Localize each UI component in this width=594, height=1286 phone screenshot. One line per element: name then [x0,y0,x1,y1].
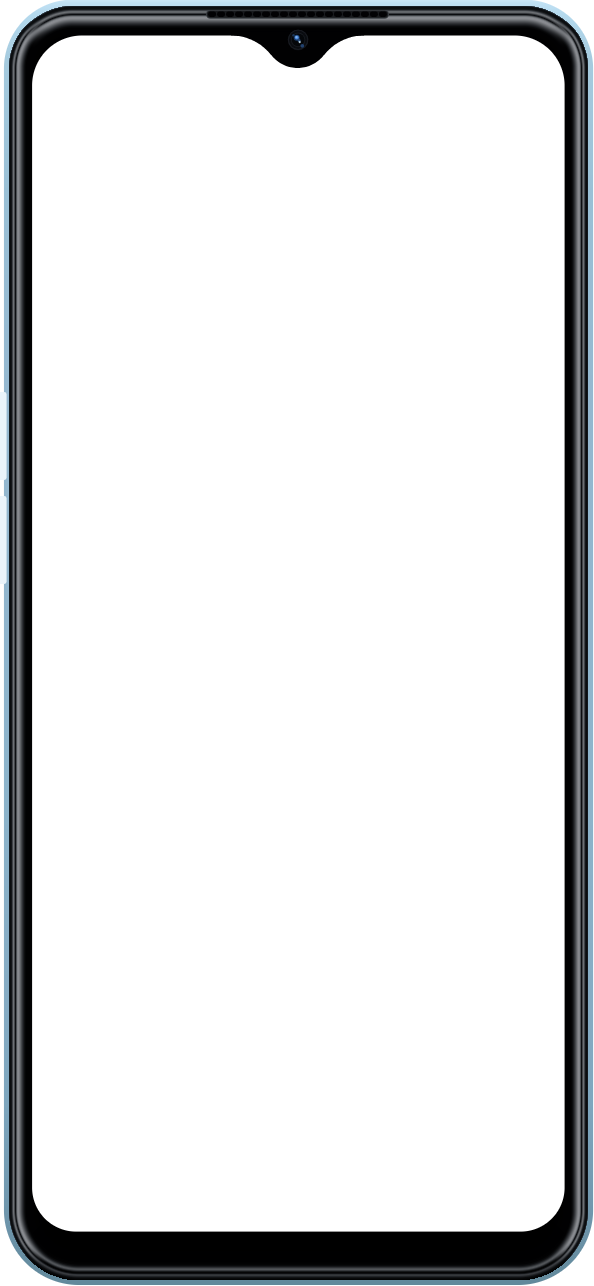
other: Phone device frame [0,0,594,1286]
